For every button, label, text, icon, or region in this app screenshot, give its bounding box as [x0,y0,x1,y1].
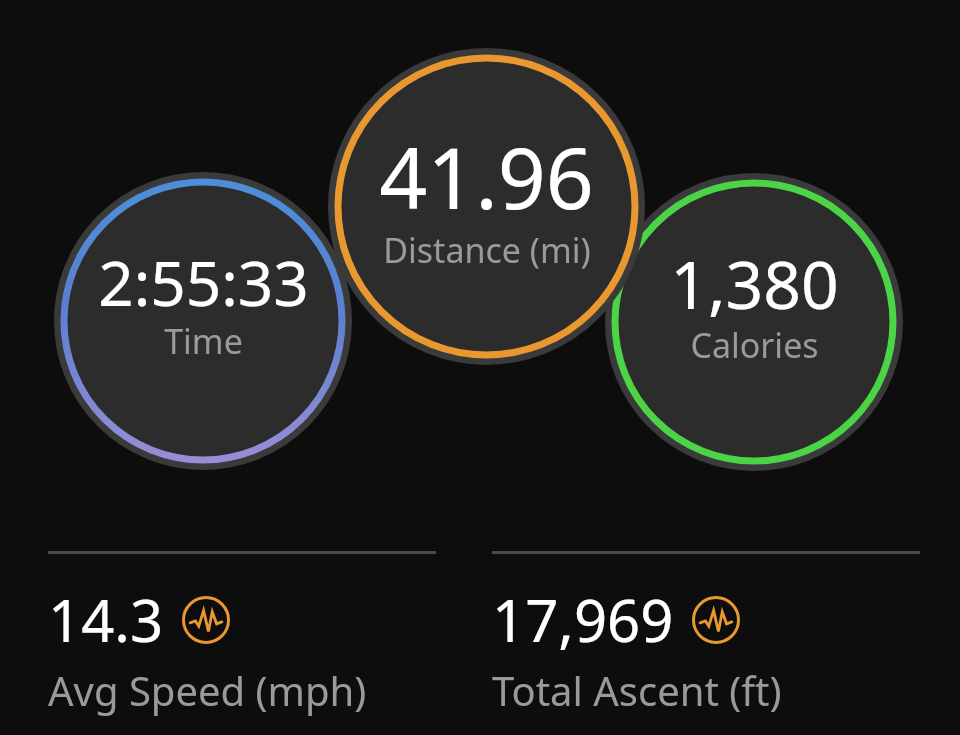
button[interactable]: Distance 41.96 miles [328,48,645,365]
staticText: Distance (mi) [383,227,591,273]
staticText: Calories [690,322,819,368]
staticText: 2:55:33 [98,240,309,324]
staticText: 14.3 [48,580,164,659]
button[interactable]: Time 2:55:33 [54,172,352,470]
other: Details [692,596,740,644]
staticText: Time [164,318,243,364]
staticText: 41.96 [379,119,594,233]
button[interactable]: 17,969 [492,551,920,717]
button[interactable]: 14.3 [48,551,436,717]
staticText: Total Ascent (ft) [492,663,782,717]
button[interactable]: Calories 1,380 [605,173,903,471]
staticText: 17,969 [492,580,674,659]
staticText: 1,380 [670,238,839,328]
staticText: Avg Speed (mph) [48,663,367,717]
other: Details [182,596,230,644]
